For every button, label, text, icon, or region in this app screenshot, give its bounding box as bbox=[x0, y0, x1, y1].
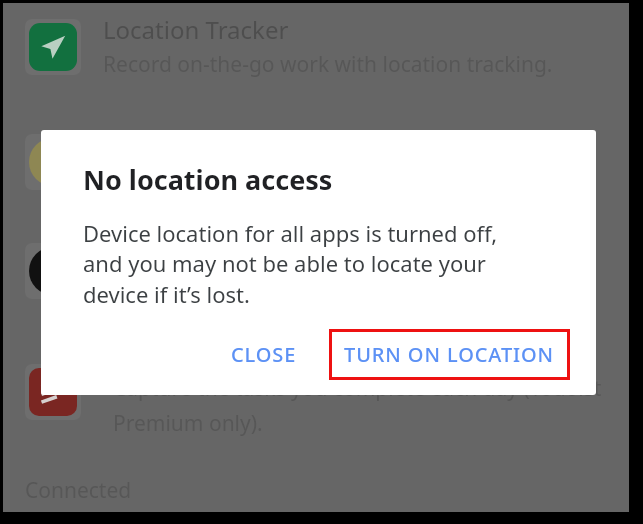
staticText: Premium only). bbox=[113, 409, 263, 438]
staticText: Connected bbox=[25, 476, 132, 505]
button[interactable]: Location Tracker bbox=[3, 13, 629, 79]
button[interactable]: TURN ON LOCATION bbox=[329, 329, 570, 380]
staticText: CLOSE bbox=[231, 341, 297, 368]
staticText: Location Tracker bbox=[103, 13, 289, 46]
staticText: No location access bbox=[83, 161, 333, 198]
button[interactable]: CLOSE bbox=[217, 329, 311, 380]
staticText: Device location for all apps is turned o… bbox=[83, 218, 498, 310]
staticText: Record on-the-go work with location trac… bbox=[103, 50, 553, 79]
staticText: TURN ON LOCATION bbox=[344, 341, 555, 368]
staticText: Capture the tasks you complete each day … bbox=[113, 374, 602, 403]
